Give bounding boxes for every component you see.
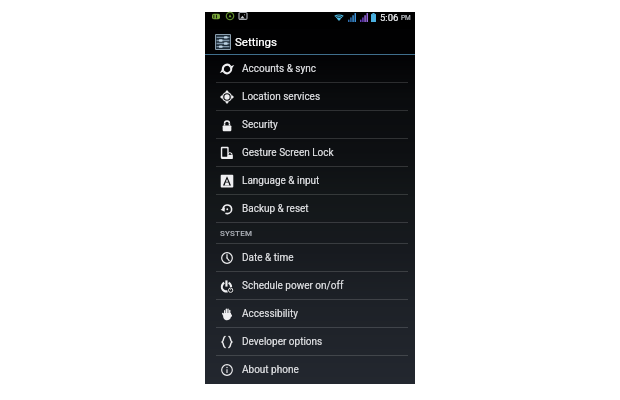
staticText: PM: [401, 14, 411, 22]
button[interactable]: About phone: [205, 356, 415, 383]
staticText: Settings: [235, 35, 277, 48]
button[interactable]: Location services: [205, 83, 415, 110]
staticText: Accounts & sync: [242, 63, 316, 75]
button[interactable]: Security: [205, 111, 415, 138]
staticText: Schedule power on/off: [242, 280, 344, 292]
button[interactable]: Settings: [205, 29, 415, 54]
staticText: Accessibility: [242, 308, 298, 320]
button[interactable]: Accessibility: [205, 300, 415, 327]
button[interactable]: Developer options: [205, 328, 415, 355]
staticText: Security: [242, 119, 278, 131]
button[interactable]: Gesture Screen Lock: [205, 139, 415, 166]
staticText: Gesture Screen Lock: [242, 147, 334, 159]
staticText: SYSTEM: [220, 229, 253, 238]
button[interactable]: Language & input: [205, 167, 415, 194]
button[interactable]: Accounts & sync: [205, 55, 415, 82]
button[interactable]: Schedule power on/off: [205, 272, 415, 299]
button[interactable]: Date & time: [205, 244, 415, 271]
button[interactable]: Backup & reset: [205, 195, 415, 222]
staticText: Backup & reset: [242, 203, 309, 215]
staticText: About phone: [242, 364, 299, 376]
staticText: Language & input: [242, 175, 320, 187]
staticText: Date & time: [242, 252, 294, 264]
staticText: Location services: [242, 91, 321, 103]
staticText: Developer options: [242, 336, 323, 348]
staticText: 5:06: [380, 12, 399, 23]
